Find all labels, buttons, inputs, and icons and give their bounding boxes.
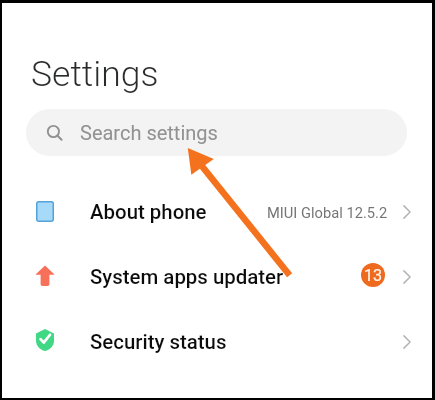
staticText: Security status [90, 330, 227, 354]
button[interactable]: Search settings [26, 109, 407, 156]
staticText: MIUI Global 12.5.2 [267, 204, 388, 221]
staticText: 13 [364, 266, 383, 285]
staticText: About phone [90, 200, 207, 224]
staticText: Settings [31, 53, 159, 95]
button[interactable]: System apps updater [2, 245, 432, 309]
staticText: Search settings [80, 121, 218, 144]
staticText: System apps updater [90, 265, 284, 289]
button[interactable]: Security status [2, 310, 432, 374]
button[interactable]: About phone [2, 180, 432, 244]
